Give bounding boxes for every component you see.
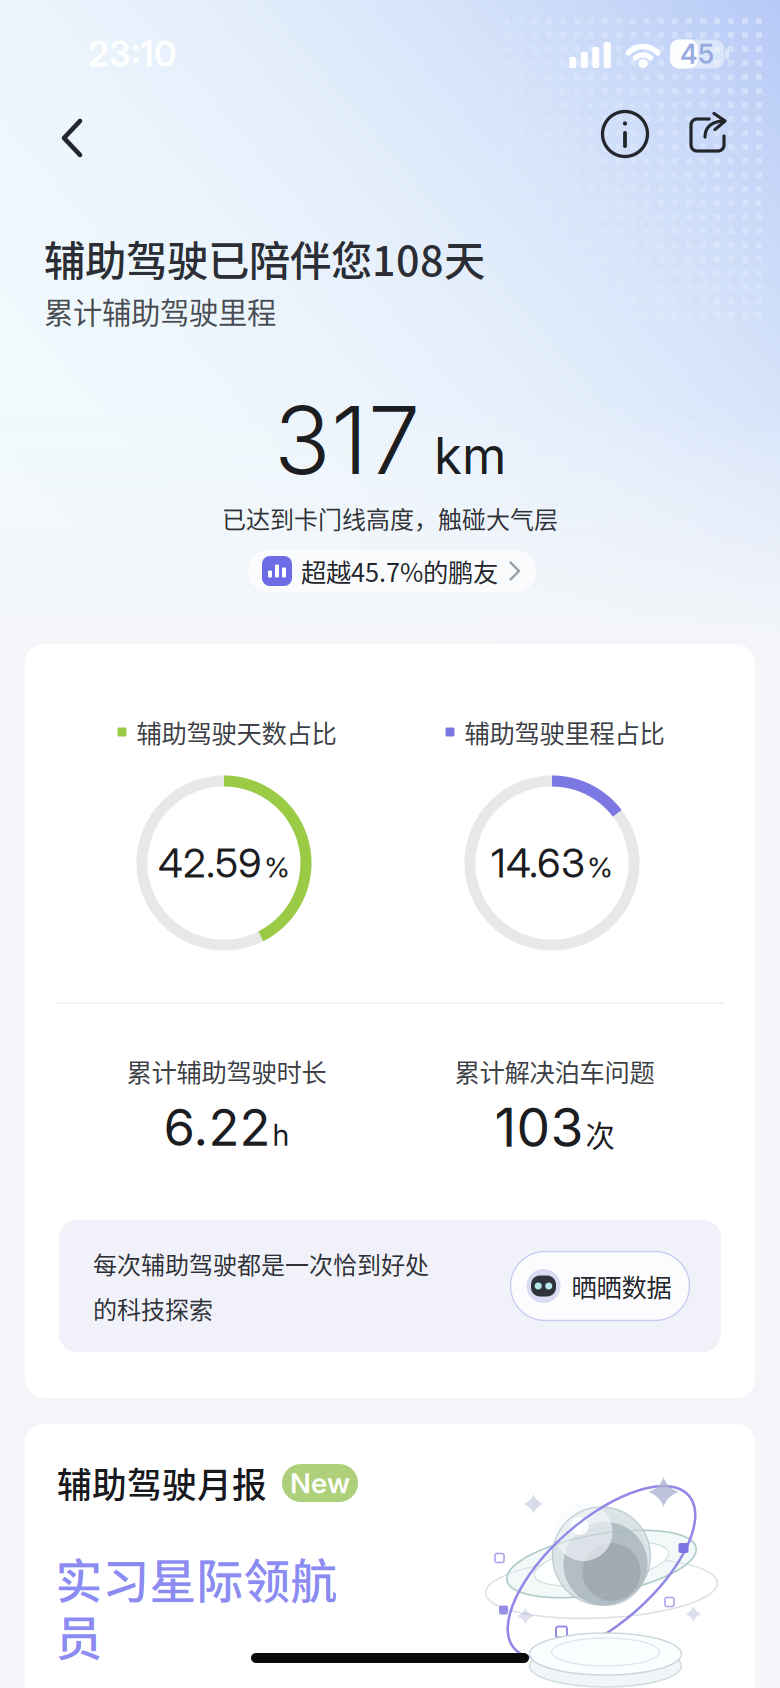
staticText: 的科技探索	[93, 1291, 213, 1326]
staticText: 每次辅助驾驶都是一次恰到好处	[93, 1246, 429, 1281]
staticText: 次	[585, 1113, 614, 1155]
staticText: 103	[494, 1095, 583, 1160]
staticText: 累计辅助驾驶里程	[44, 290, 276, 332]
staticText: h	[272, 1117, 289, 1153]
staticText: 辅助驾驶月报	[57, 1458, 267, 1508]
staticText: 6.22	[163, 1097, 270, 1158]
staticText: 14.63	[491, 839, 585, 887]
staticText: 42.59	[158, 839, 262, 887]
staticText: 超越45.7%的鹏友	[301, 553, 498, 589]
staticText: 辅助驾驶里程占比	[464, 714, 664, 750]
staticText: 317	[274, 383, 420, 496]
staticText: 23:10	[88, 33, 176, 75]
button[interactable]: Back	[37, 103, 107, 173]
staticText: %	[587, 850, 613, 884]
staticText: 实习星际领航	[55, 1544, 337, 1612]
button[interactable]: Information	[594, 103, 656, 165]
staticText: 辅助驾驶天数占比	[136, 714, 336, 750]
staticText: 已达到卡门线高度，触碰大气层	[222, 501, 558, 535]
staticText: 累计解决泊车问题	[454, 1053, 654, 1089]
button[interactable]: Share	[676, 103, 738, 165]
staticText: 45	[680, 38, 714, 70]
staticText: 晒晒数据	[571, 1268, 671, 1304]
staticText: 累计辅助驾驶时长	[126, 1053, 326, 1089]
staticText: km	[434, 425, 506, 486]
button[interactable]: 晒晒数据	[510, 1251, 689, 1320]
staticText: 员	[55, 1601, 102, 1669]
button[interactable]: 超越45.7%的鹏友	[248, 549, 536, 592]
staticText: New	[290, 1466, 350, 1500]
staticText: 辅助驾驶已陪伴您108天	[44, 228, 485, 288]
staticText: %	[264, 850, 290, 884]
